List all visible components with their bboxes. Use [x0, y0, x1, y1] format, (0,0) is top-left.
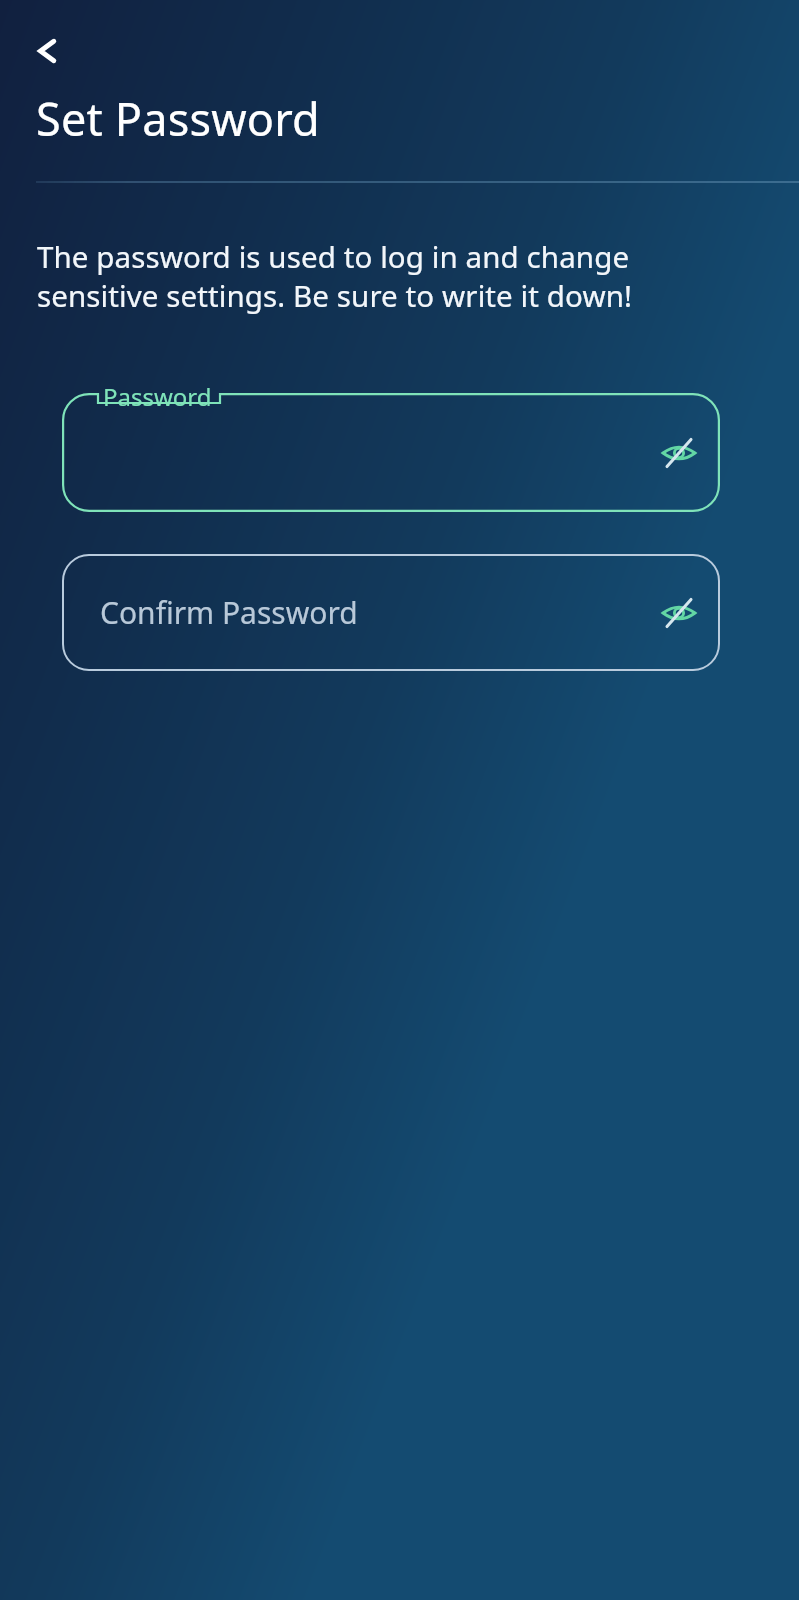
button[interactable]: Show password — [648, 422, 710, 484]
button[interactable]: Password — [62, 393, 720, 512]
button[interactable]: Show password — [648, 582, 710, 644]
button[interactable]: Back — [18, 22, 76, 80]
staticText: The password is used to log in and chang… — [37, 236, 633, 315]
staticText: Set Password — [36, 88, 320, 149]
button[interactable]: Confirm Password — [62, 554, 720, 671]
staticText: Confirm Password — [100, 592, 358, 633]
staticText: Password — [103, 380, 212, 413]
